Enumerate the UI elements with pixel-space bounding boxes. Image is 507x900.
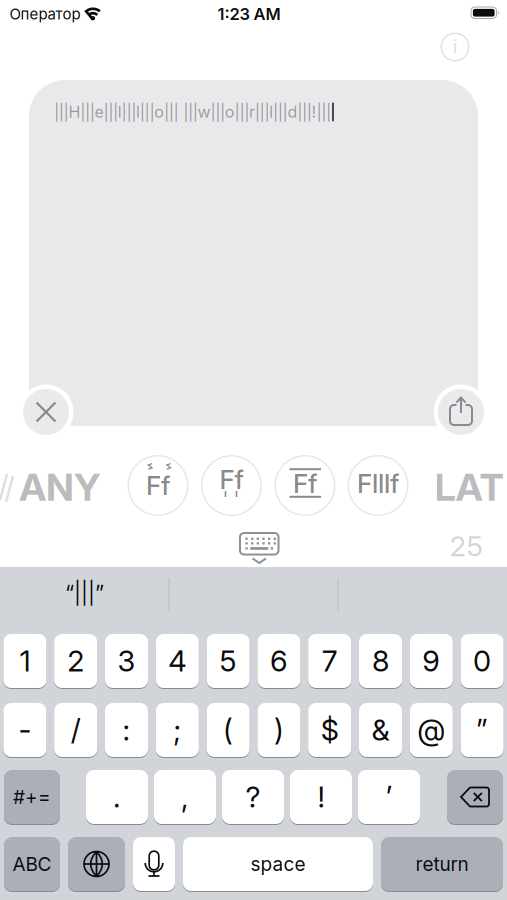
button[interactable]: 5	[206, 634, 250, 688]
button[interactable]: Share	[433, 384, 488, 439]
button[interactable]: 1	[3, 634, 46, 688]
button[interactable]: return	[381, 837, 503, 891]
staticText: 4	[168, 643, 186, 679]
staticText: 5	[220, 643, 237, 679]
staticText: Ff	[293, 468, 317, 499]
button[interactable]: space	[183, 837, 373, 891]
staticText: 3	[117, 643, 135, 679]
staticText: ;	[173, 712, 181, 748]
staticText: i	[453, 37, 457, 57]
button[interactable]: #+=	[4, 770, 60, 824]
staticText: $	[321, 712, 339, 748]
staticText: Flllf	[357, 468, 399, 499]
button[interactable]: Font style 3	[274, 455, 335, 516]
button[interactable]: 4	[156, 634, 199, 688]
button[interactable]: 0	[460, 634, 504, 688]
staticText: ”	[476, 712, 488, 748]
button[interactable]: (	[206, 703, 250, 757]
button[interactable]: /	[54, 703, 97, 757]
staticText: 7	[322, 643, 338, 679]
button[interactable]: !	[290, 770, 352, 824]
staticText: |||H|||e|||l|||l|||o||| |||w|||o|||r|||l…	[54, 102, 331, 122]
staticText: 8	[372, 643, 389, 679]
button[interactable]: ;	[156, 703, 199, 757]
staticText: -	[18, 712, 31, 748]
staticText: /	[71, 712, 81, 748]
staticText: &	[371, 712, 389, 748]
staticText: 1:23 AM	[217, 4, 280, 24]
staticText: return	[415, 852, 468, 875]
button[interactable]: Delete	[447, 770, 503, 824]
button[interactable]: 3	[105, 634, 148, 688]
button[interactable]: 7	[308, 634, 351, 688]
button[interactable]: ABC	[4, 837, 60, 891]
button[interactable]: Latin fonts category	[434, 464, 503, 510]
button[interactable]: Any fonts category	[19, 464, 101, 510]
staticText: !	[317, 779, 324, 815]
button[interactable]: Suggestion |||	[0, 569, 168, 617]
button[interactable]: .	[86, 770, 148, 824]
button[interactable]: 9	[410, 634, 453, 688]
button[interactable]: &	[359, 703, 402, 757]
button[interactable]: ”	[460, 703, 504, 757]
button[interactable]: Info	[440, 32, 469, 61]
button[interactable]: Dismiss keyboard	[240, 533, 279, 564]
button[interactable]: $	[308, 703, 351, 757]
staticText: 0	[473, 643, 491, 679]
button[interactable]: 8	[359, 634, 402, 688]
button[interactable]: Next keyboard	[68, 837, 125, 891]
button[interactable]: :	[105, 703, 148, 757]
button[interactable]: 6	[257, 634, 300, 688]
button[interactable]: Font style 4	[347, 455, 408, 516]
staticText: :	[122, 712, 130, 748]
button[interactable]: -	[3, 703, 46, 757]
button[interactable]: ?	[222, 770, 284, 824]
staticText: .	[113, 779, 121, 815]
staticText: ?	[245, 779, 260, 815]
button[interactable]: Clear text	[18, 384, 73, 439]
staticText: @	[417, 712, 445, 748]
button[interactable]: )	[257, 703, 300, 757]
staticText: 6	[270, 643, 288, 679]
staticText: ANY	[19, 464, 101, 510]
staticText: ’	[385, 779, 392, 815]
staticText: )	[274, 712, 284, 748]
staticText: 9	[422, 643, 440, 679]
button[interactable]: @	[410, 703, 453, 757]
staticText: (	[223, 712, 233, 748]
staticText: 1	[19, 643, 30, 679]
staticText: Ff	[219, 464, 243, 495]
button[interactable]: 2	[54, 634, 97, 688]
staticText: Ff	[146, 470, 170, 501]
staticText: 25	[449, 529, 482, 563]
staticText: ,	[181, 779, 189, 815]
staticText: ABC	[12, 852, 51, 875]
button[interactable]: Font style 2	[201, 455, 262, 516]
staticText: “|||”	[65, 580, 104, 606]
staticText: space	[250, 852, 305, 875]
button[interactable]: ’	[358, 770, 420, 824]
staticText: 2	[67, 643, 84, 679]
button[interactable]: ,	[154, 770, 216, 824]
staticText: LAT	[434, 464, 503, 510]
staticText: Оператор	[9, 5, 80, 23]
button[interactable]: Dictation	[133, 837, 175, 891]
staticText: #+=	[13, 785, 51, 808]
button[interactable]: Font style 1	[127, 455, 188, 516]
